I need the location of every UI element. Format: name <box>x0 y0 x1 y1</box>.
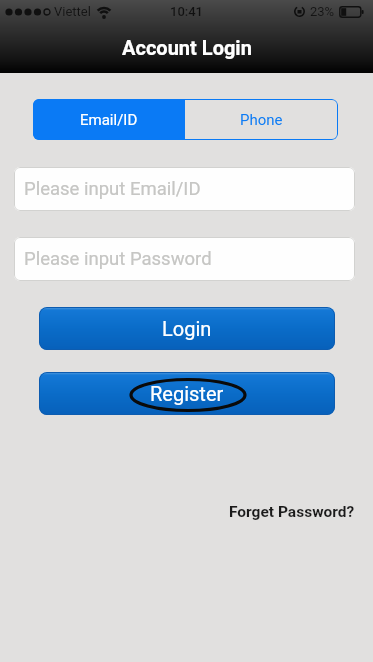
staticText: Login <box>162 317 212 340</box>
button[interactable]: Email/ID <box>33 99 185 140</box>
staticText: Viettel <box>54 4 91 19</box>
staticText: Register <box>150 382 224 405</box>
button[interactable]: Please input Password <box>14 237 355 281</box>
staticText: 23% <box>310 4 335 19</box>
button[interactable]: Phone <box>185 99 338 140</box>
staticText: 10:41 <box>170 4 204 19</box>
button[interactable]: Login <box>39 307 335 350</box>
button[interactable]: Forget Password? <box>229 503 355 521</box>
staticText: Account Login <box>122 36 252 59</box>
staticText: Please input Password <box>24 248 212 270</box>
staticText: Email/ID <box>80 111 138 129</box>
button[interactable]: Please input Email/ID <box>14 167 355 211</box>
staticText: Phone <box>240 111 283 129</box>
staticText: Forget Password? <box>229 503 355 521</box>
button[interactable]: Register <box>39 372 335 415</box>
staticText: Please input Email/ID <box>24 178 201 200</box>
